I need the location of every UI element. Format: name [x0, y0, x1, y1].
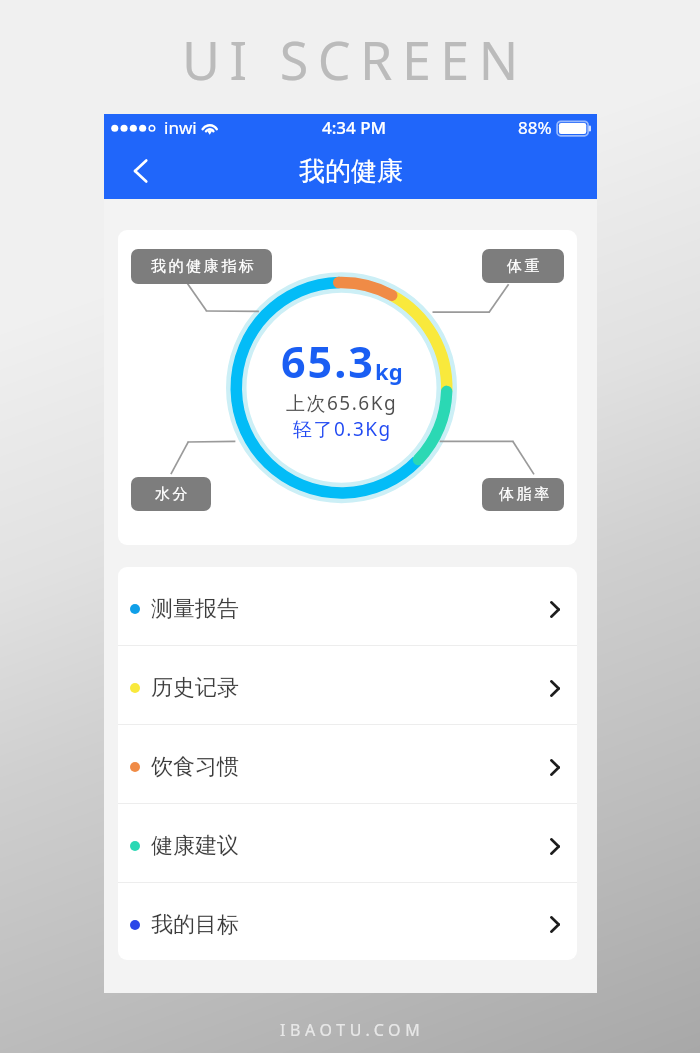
button[interactable]: 饮食习惯	[118, 725, 577, 804]
staticText: 测量报告	[151, 595, 239, 623]
staticText: 4:34 PM	[322, 116, 387, 139]
button[interactable]: Back	[123, 153, 159, 189]
staticText: IBAOTU.COM	[280, 1019, 425, 1041]
staticText: 历史记录	[151, 674, 239, 702]
staticText: UI SCREEN	[182, 24, 528, 95]
staticText: kg	[375, 356, 403, 386]
staticText: 体脂率	[499, 485, 552, 504]
button[interactable]: 健康建议	[118, 804, 577, 883]
staticText: 65.3	[281, 332, 375, 391]
staticText: 轻了0.3Kg	[293, 416, 392, 442]
staticText: 我的目标	[151, 911, 239, 939]
button[interactable]: 我的健康指标	[131, 249, 272, 284]
staticText: 体重	[507, 257, 543, 276]
button[interactable]: 体脂率	[482, 478, 564, 511]
button[interactable]: 水分	[131, 477, 211, 511]
button[interactable]: 我的目标	[118, 883, 577, 960]
staticText: 上次65.6Kg	[286, 390, 398, 416]
staticText: 水分	[155, 485, 191, 504]
button[interactable]: 体重	[482, 249, 564, 283]
staticText: 健康建议	[151, 832, 239, 860]
button[interactable]: 测量报告	[118, 567, 577, 646]
staticText: 88%	[518, 116, 552, 139]
staticText: 饮食习惯	[151, 753, 239, 781]
staticText: 我的健康指标	[151, 257, 257, 276]
staticText: 我的健康	[299, 155, 403, 188]
button[interactable]: 历史记录	[118, 646, 577, 725]
staticText: inwi	[164, 116, 197, 139]
